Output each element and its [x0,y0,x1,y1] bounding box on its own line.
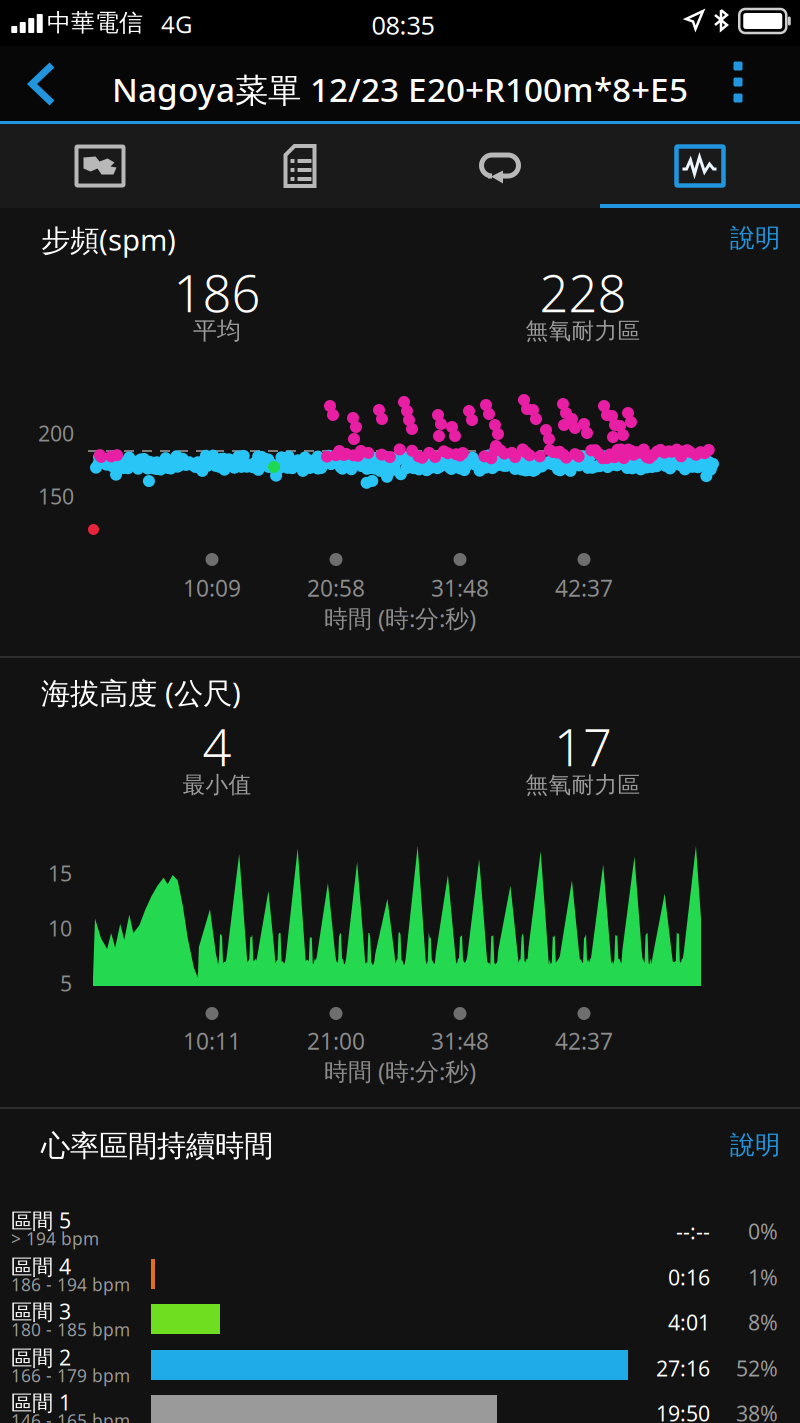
button[interactable]: 區間 4 [0,1252,800,1298]
button[interactable]: Back [4,46,80,122]
staticText: 平均 [193,316,241,345]
staticText: 海拔高度 (公尺) [41,673,241,712]
staticText: 無氧耐力區 [525,771,640,799]
staticText: 4:01 [668,1308,710,1336]
staticText: 區間 1 [11,1388,71,1416]
staticText: 10:09 [183,573,241,603]
staticText: 說明 [730,222,780,253]
staticText: 5 [60,969,72,997]
button[interactable]: Details [200,124,400,208]
staticText: 無氧耐力區 [525,317,640,345]
button[interactable]: Charts [600,124,800,208]
staticText: 166 - 179 bpm [11,1364,130,1387]
staticText: 4 [202,713,231,780]
staticText: 心率區間持續時間 [41,1128,273,1164]
staticText: Nagoya菜單 12/23 E20+R100m*8+E5 [112,67,688,111]
staticText: 區間 3 [11,1297,71,1325]
staticText: --:-- [676,1217,710,1245]
staticText: 15 [48,859,72,887]
staticText: 17 [554,713,612,780]
staticText: 42:37 [555,1026,613,1056]
staticText: 31:48 [431,573,489,603]
staticText: 時間 (時:分:秒) [324,602,476,634]
button[interactable]: Laps [400,124,600,208]
staticText: 0:16 [668,1263,710,1291]
staticText: 200 [38,419,74,447]
staticText: 8% [748,1308,778,1336]
staticText: 步頻(spm) [41,220,176,259]
button[interactable]: More options [708,44,768,120]
staticText: 38% [736,1399,778,1423]
staticText: 區間 4 [11,1252,71,1280]
staticText: 說明 [730,1129,780,1160]
staticText: > 194 bpm [11,1227,99,1250]
staticText: 186 - 194 bpm [11,1273,130,1296]
staticText: 中華電信 [47,8,143,37]
staticText: 31:48 [431,1026,489,1056]
staticText: 146 - 165 bpm [11,1409,130,1423]
button[interactable]: 區間 3 [0,1297,800,1343]
staticText: 52% [736,1354,778,1382]
staticText: 19:50 [656,1399,710,1423]
staticText: 區間 5 [11,1206,71,1234]
staticText: 1% [748,1263,778,1291]
staticText: 10 [48,914,72,942]
staticText: 21:00 [307,1026,365,1056]
staticText: 最小值 [182,771,251,799]
staticText: 0% [748,1217,778,1245]
button[interactable]: 說明 [670,215,780,261]
staticText: 區間 2 [11,1343,71,1371]
button[interactable]: 區間 2 [0,1343,800,1389]
staticText: 20:58 [307,573,365,603]
staticText: 180 - 185 bpm [11,1318,130,1341]
button[interactable]: 區間 1 [0,1388,800,1423]
staticText: 42:37 [555,573,613,603]
staticText: 186 [173,259,260,326]
staticText: 10:11 [183,1026,241,1056]
button[interactable]: 區間 5 [0,1206,800,1252]
staticText: 228 [539,259,626,326]
staticText: 4G [161,8,192,40]
staticText: 時間 (時:分:秒) [324,1055,476,1087]
staticText: 150 [38,482,74,510]
button[interactable]: 說明 [670,1122,780,1168]
staticText: 27:16 [656,1354,710,1382]
button[interactable]: Map [0,124,200,208]
staticText: 08:35 [371,8,434,42]
